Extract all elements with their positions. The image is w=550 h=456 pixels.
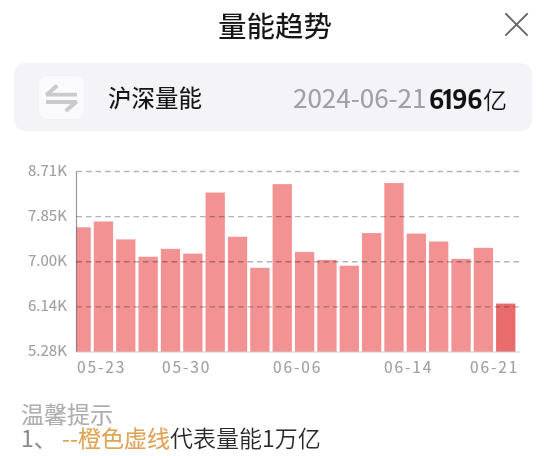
staticText: 6196	[429, 81, 483, 115]
staticText: 温馨提示	[21, 396, 113, 429]
staticText: 05-23	[77, 355, 127, 375]
button[interactable]: Close	[498, 6, 535, 43]
staticText: 06-21	[470, 355, 520, 375]
button[interactable]: 沪深量能	[14, 63, 532, 131]
staticText: 06-06	[273, 355, 323, 375]
staticText: 7.85K	[28, 204, 67, 226]
staticText: 亿	[483, 81, 507, 116]
staticText: 06-14	[384, 355, 434, 375]
staticText: 05-30	[162, 355, 212, 375]
staticText: 5.28K	[28, 339, 67, 361]
staticText: 8.71K	[28, 159, 67, 181]
staticText: 6.14K	[28, 294, 67, 316]
staticText: 7.00K	[28, 249, 67, 271]
staticText: 1、 --橙色虚线代表量能1万亿	[21, 420, 321, 453]
staticText: 量能趋势	[218, 4, 333, 45]
staticText: 沪深量能	[108, 80, 202, 114]
staticText: 2024-06-21	[293, 78, 427, 116]
